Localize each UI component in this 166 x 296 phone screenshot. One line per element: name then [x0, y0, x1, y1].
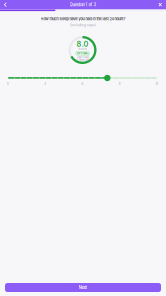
button[interactable]: Sleep hours: 8.0	[104, 75, 110, 81]
staticText: 0	[7, 82, 9, 86]
staticText: Next	[78, 285, 87, 290]
button[interactable]: Next	[5, 283, 161, 292]
button[interactable]: Close	[156, 0, 165, 9]
staticText: OPTIMAL	[76, 52, 88, 55]
staticText: Question 1 of 3	[69, 2, 96, 7]
staticText: 3	[44, 82, 46, 86]
staticText: 8.0	[76, 40, 88, 48]
staticText: 12	[155, 82, 158, 86]
staticText: 9	[119, 82, 121, 86]
staticText: Adults need	[76, 56, 88, 59]
staticText: hours	[78, 47, 86, 51]
button[interactable]: Back	[1, 0, 10, 9]
staticText: How much sleep have you had in the last …	[40, 17, 125, 21]
staticText: (including naps)	[70, 23, 96, 27]
staticText: 6	[81, 82, 83, 86]
staticText: 7-9 hours/night	[75, 59, 90, 61]
